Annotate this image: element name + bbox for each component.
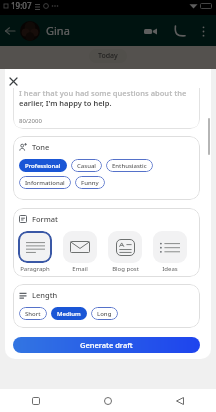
staticText: Tone <box>32 142 50 152</box>
staticText: Professional <box>25 162 61 170</box>
staticText: Generate draft <box>80 340 133 350</box>
button[interactable]: Enthusiastic <box>106 159 153 172</box>
button[interactable]: Generate draft <box>13 337 200 353</box>
staticText: I hear that you had some questions about… <box>19 88 194 98</box>
button[interactable]: Back <box>2 23 18 39</box>
staticText: Today <box>98 51 118 61</box>
button[interactable]: Casual <box>71 159 102 172</box>
button[interactable]: More options <box>195 23 211 39</box>
button[interactable]: Video call <box>139 20 161 42</box>
button[interactable]: Email <box>63 231 97 273</box>
staticText: 19:07 <box>11 0 32 11</box>
button[interactable]: Professional <box>19 159 67 172</box>
button[interactable]: Close <box>6 74 20 88</box>
staticText: Paragraph <box>20 265 50 273</box>
button[interactable]: Back <box>169 390 191 412</box>
staticText: Blog post <box>112 265 139 273</box>
staticText: Enthusiastic <box>112 162 147 170</box>
staticText: Email <box>72 265 88 273</box>
staticText: Format <box>32 214 58 224</box>
button[interactable]: Funny <box>75 176 105 189</box>
staticText: Casual <box>77 162 96 170</box>
staticText: Length <box>32 290 58 300</box>
button[interactable]: Recents <box>25 390 47 412</box>
button[interactable]: Long <box>91 307 118 320</box>
button[interactable]: Call <box>169 20 191 42</box>
staticText: Ideas <box>162 265 178 273</box>
button[interactable]: Home <box>97 390 119 412</box>
button[interactable]: Ideas <box>153 231 187 273</box>
button[interactable]: Blog post <box>108 231 142 273</box>
button[interactable]: Paragraph <box>18 231 52 273</box>
button[interactable]: Medium <box>51 307 87 320</box>
staticText: Short <box>25 310 41 318</box>
staticText: Long <box>97 310 112 318</box>
staticText: 80/2000 <box>19 117 42 125</box>
staticText: Informational <box>25 179 65 187</box>
button[interactable]: Informational <box>19 176 71 189</box>
staticText: earlier, I'm happy to help. <box>19 98 112 108</box>
staticText: Medium <box>57 310 81 318</box>
staticText: Funny <box>81 179 99 187</box>
button[interactable]: Short <box>19 307 47 320</box>
staticText: Gina <box>46 23 70 38</box>
